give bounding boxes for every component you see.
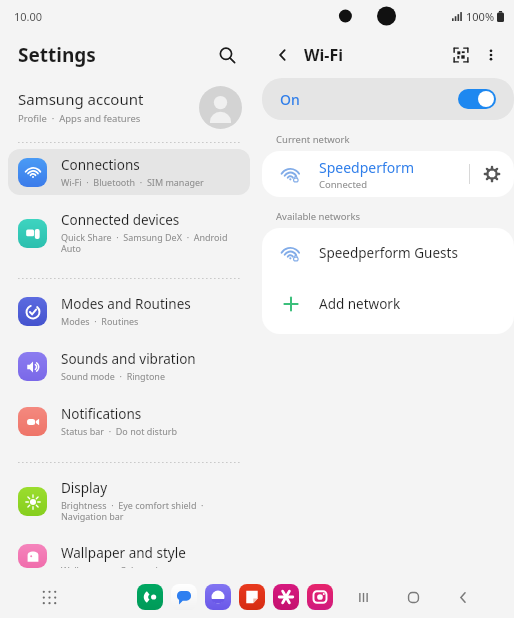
button[interactable]: phone [137, 584, 163, 610]
button[interactable]: Back [268, 40, 298, 70]
button[interactable]: Speedperform [262, 151, 514, 197]
button[interactable]: Connections [8, 149, 250, 195]
button[interactable]: asterisk [273, 584, 299, 610]
staticText: 100% [466, 9, 495, 24]
staticText: Available networks [276, 210, 360, 223]
button[interactable]: Scan QR code [446, 40, 476, 70]
staticText: Speedperform Guests [319, 244, 458, 262]
staticText: Sound mode · Ringtone [61, 370, 165, 382]
staticText: Wallpapers · Color palette [61, 564, 175, 568]
staticText: Display [61, 479, 108, 497]
staticText: Modes and Routines [61, 295, 191, 313]
button[interactable]: messages [171, 584, 197, 610]
button[interactable]: Samsung account [0, 78, 258, 136]
button[interactable]: Wallpaper and style [8, 537, 250, 575]
button[interactable]: notes [239, 584, 265, 610]
button[interactable]: Modes and Routines [8, 288, 250, 334]
staticText: Sounds and vibration [61, 350, 196, 368]
staticText: On [280, 90, 300, 109]
button[interactable]: internet [205, 584, 231, 610]
button[interactable]: On [262, 78, 514, 120]
staticText: Modes · Routines [61, 315, 139, 327]
staticText: Notifications [61, 405, 142, 423]
button[interactable]: Home [400, 584, 426, 610]
staticText: Wi-Fi · Bluetooth · SIM manager [61, 176, 204, 188]
staticText: Profile · Apps and features [18, 112, 141, 125]
button[interactable]: Notifications [8, 398, 250, 444]
button[interactable]: Speedperform Guests [262, 228, 514, 278]
staticText: Brightness · Eye comfort shield · Naviga… [61, 499, 204, 523]
button[interactable]: Recent apps [350, 584, 376, 610]
staticText: Connected devices [61, 211, 180, 229]
staticText: Connections [61, 156, 140, 174]
staticText: Current network [276, 133, 350, 146]
button[interactable]: Back [450, 584, 476, 610]
staticText: Quick Share · Samsung DeX · Android Auto [61, 231, 228, 255]
staticText: Settings [18, 42, 96, 68]
staticText: Samsung account [18, 89, 144, 109]
staticText: Wi-Fi [304, 44, 343, 66]
button[interactable]: Search [212, 40, 242, 70]
button[interactable]: More options [476, 40, 506, 70]
button[interactable]: Add network [262, 278, 514, 330]
staticText: Status bar · Do not disturb [61, 425, 177, 437]
button[interactable]: Network settings [470, 152, 514, 196]
button[interactable]: Display [8, 472, 250, 530]
button[interactable]: All apps [34, 582, 64, 612]
staticText: Add network [319, 295, 401, 313]
staticText: Speedperform [319, 158, 415, 177]
button[interactable]: instagram [307, 584, 333, 610]
staticText: Connected [319, 178, 368, 191]
staticText: 10.00 [14, 9, 43, 24]
staticText: Wallpaper and style [61, 544, 186, 562]
button[interactable]: Sounds and vibration [8, 343, 250, 389]
button[interactable]: Connected devices [8, 204, 250, 262]
